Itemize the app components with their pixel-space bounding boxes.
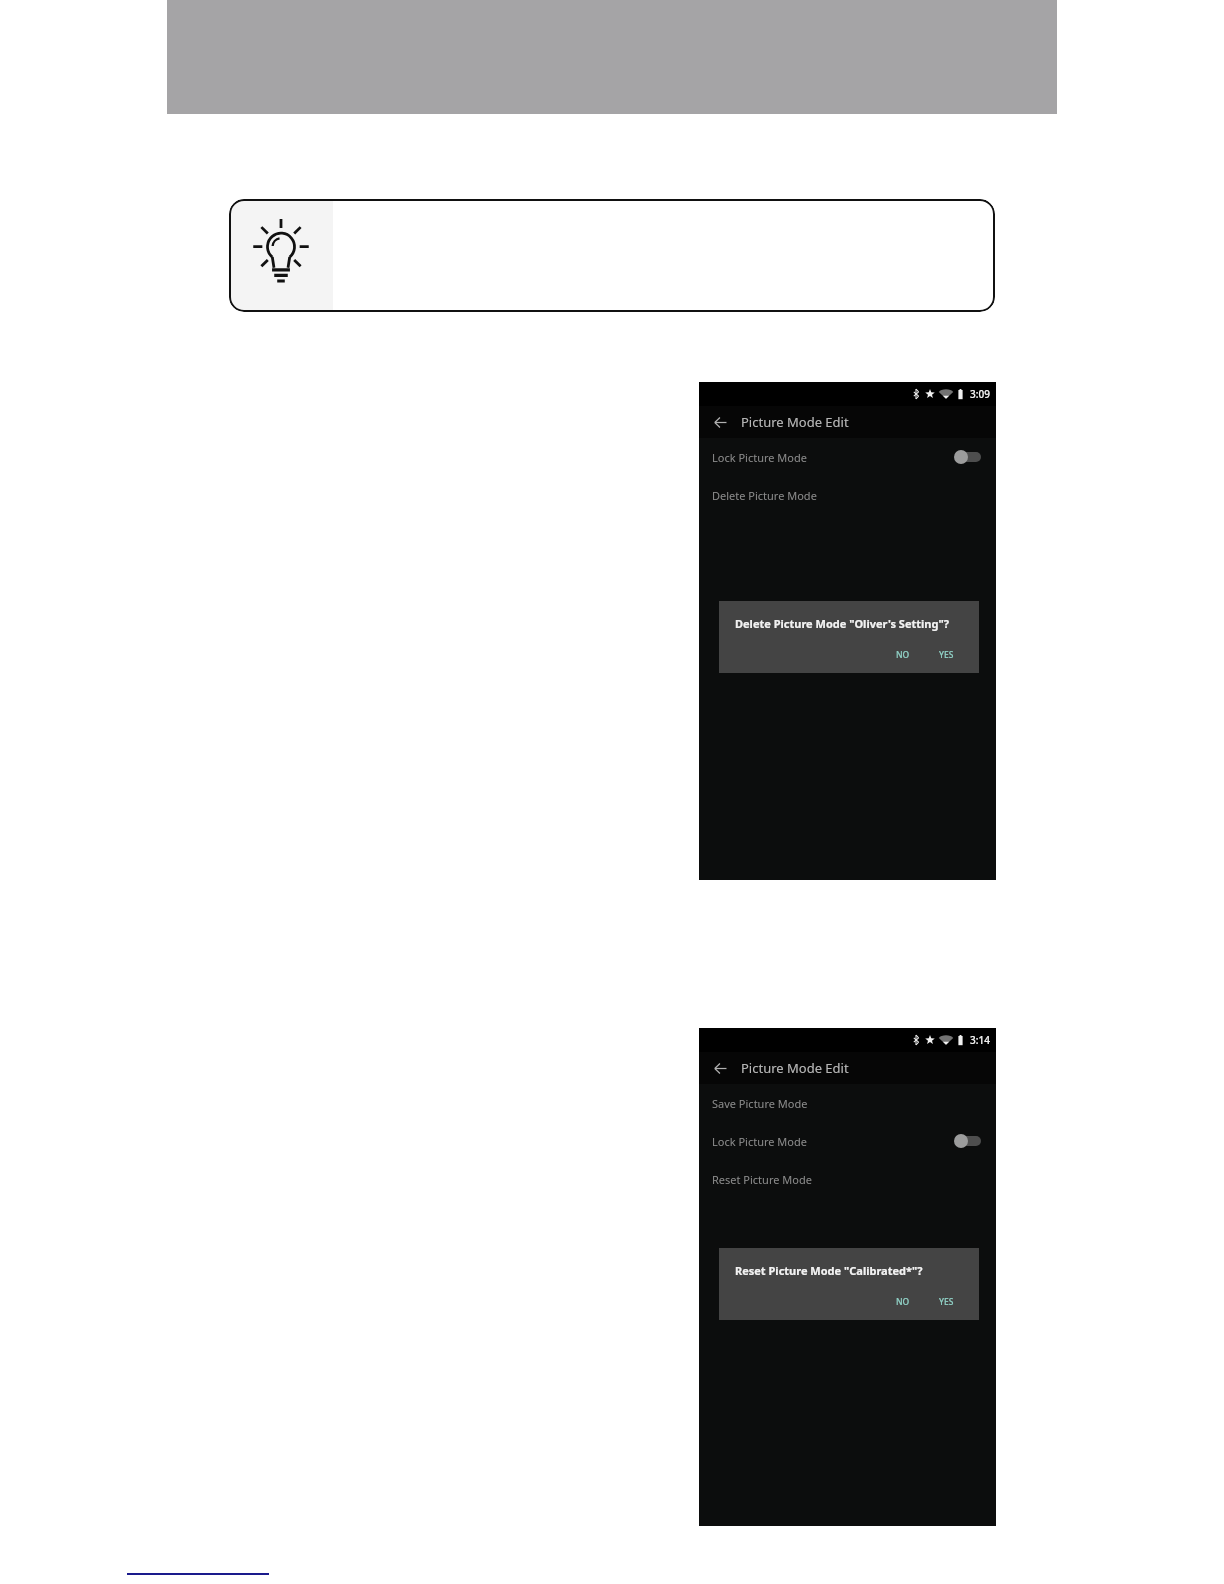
staticText: 3:14 [970, 1033, 990, 1047]
button[interactable]: YES [934, 1294, 959, 1310]
button[interactable]: Save Picture Mode [699, 1084, 996, 1122]
button[interactable]: YES [934, 647, 959, 663]
button[interactable]: NO [891, 1294, 915, 1310]
staticText: Delete Picture Mode [712, 488, 817, 503]
staticText: Lock Picture Mode [712, 450, 807, 465]
staticText: 3:09 [970, 387, 990, 401]
staticText: Reset Picture Mode "Calibrated*"? [735, 1263, 923, 1278]
staticText: YES [939, 649, 954, 661]
button[interactable]: NO [891, 647, 915, 663]
button[interactable]: Reset Picture Mode [699, 1160, 996, 1198]
staticText: Picture Mode Edit [741, 413, 849, 431]
staticText: NO [896, 649, 910, 661]
staticText: Save Picture Mode [712, 1096, 808, 1111]
button[interactable]: Lock Picture Mode [699, 438, 996, 476]
staticText: NO [896, 1296, 910, 1308]
button[interactable]: Lock Picture Mode [699, 1122, 996, 1160]
staticText: Reset Picture Mode [712, 1172, 812, 1187]
button[interactable]: Back [699, 406, 741, 438]
staticText: Picture Mode Edit [741, 1059, 849, 1077]
button[interactable]: Delete Picture Mode [699, 476, 996, 514]
staticText: Delete Picture Mode "Oliver's Setting"? [735, 616, 949, 631]
staticText: Lock Picture Mode [712, 1134, 807, 1149]
button[interactable]: Back [699, 1052, 741, 1084]
staticText: YES [939, 1296, 954, 1308]
